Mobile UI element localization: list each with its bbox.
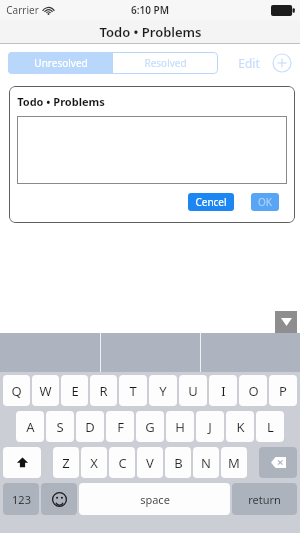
staticText: L [267, 418, 274, 436]
button[interactable]: G [136, 411, 164, 442]
button[interactable]: L [256, 411, 284, 442]
button[interactable]: Resolved [113, 52, 218, 74]
button[interactable]: Hide keyboard [275, 311, 297, 333]
staticText: N [201, 454, 211, 472]
staticText: Todo • Problems [99, 23, 202, 41]
staticText: I [221, 382, 226, 400]
staticText: 123 [12, 492, 31, 507]
staticText: Todo • Problems [17, 94, 105, 109]
staticText: K [236, 418, 245, 436]
button[interactable]: Cencel [188, 193, 234, 211]
button[interactable]: Emoji [41, 483, 77, 515]
staticText: P [279, 382, 287, 400]
button[interactable]: B [165, 447, 191, 478]
staticText: J [208, 418, 212, 436]
staticText: Cencel [195, 195, 227, 209]
staticText: Carrier [6, 3, 39, 17]
staticText: space [140, 492, 170, 507]
staticText: Unresolved [34, 56, 88, 70]
button[interactable]: J [196, 411, 224, 442]
staticText: V [146, 454, 154, 472]
button[interactable]: A [16, 411, 44, 442]
button[interactable]: Unresolved [8, 52, 113, 74]
staticText: G [145, 418, 155, 436]
button[interactable]: Add [272, 53, 292, 73]
staticText: F [117, 418, 124, 436]
button[interactable]: OK [251, 193, 279, 211]
staticText: Y [159, 382, 167, 400]
button[interactable]: P [269, 375, 297, 406]
staticText: S [56, 418, 64, 436]
button[interactable]: N [193, 447, 219, 478]
staticText: OK [258, 195, 272, 209]
staticText: B [174, 454, 183, 472]
button[interactable]: C [109, 447, 135, 478]
staticText: Edit [238, 55, 260, 71]
button[interactable]: return [232, 483, 297, 515]
button[interactable]: Z [53, 447, 79, 478]
staticText: R [99, 382, 108, 400]
button[interactable]: I [209, 375, 237, 406]
staticText: Resolved [144, 56, 187, 70]
button[interactable]: R [90, 375, 117, 406]
staticText: H [175, 418, 185, 436]
staticText: 6:10 PM [131, 3, 169, 17]
button[interactable]: Backspace [259, 447, 297, 478]
button[interactable]: 123 [3, 483, 39, 515]
staticText: X [90, 454, 98, 472]
staticText: O [248, 382, 259, 400]
button[interactable]: F [106, 411, 134, 442]
staticText: return [248, 492, 281, 507]
button[interactable]: space [79, 483, 230, 515]
staticText: W [39, 382, 52, 400]
button[interactable]: V [137, 447, 163, 478]
button[interactable] [17, 116, 287, 184]
button[interactable]: E [61, 375, 88, 406]
staticText: U [188, 382, 198, 400]
button[interactable]: T [119, 375, 147, 406]
button[interactable]: S [46, 411, 74, 442]
staticText: Q [11, 382, 22, 400]
button[interactable]: W [32, 375, 59, 406]
staticText: Z [62, 454, 70, 472]
button[interactable]: Q [3, 375, 30, 406]
staticText: C [118, 454, 127, 472]
button[interactable]: X [81, 447, 107, 478]
staticText: E [71, 382, 79, 400]
button[interactable]: K [226, 411, 254, 442]
button[interactable]: M [221, 447, 247, 478]
staticText: D [85, 418, 95, 436]
button[interactable]: U [179, 375, 207, 406]
button[interactable]: Edit [234, 51, 264, 75]
button[interactable]: O [239, 375, 267, 406]
button[interactable]: Y [149, 375, 177, 406]
staticText: M [228, 454, 240, 472]
button[interactable]: D [76, 411, 104, 442]
button[interactable]: H [166, 411, 194, 442]
staticText: A [26, 418, 35, 436]
staticText: T [129, 382, 137, 400]
button[interactable]: Shift [3, 447, 41, 478]
